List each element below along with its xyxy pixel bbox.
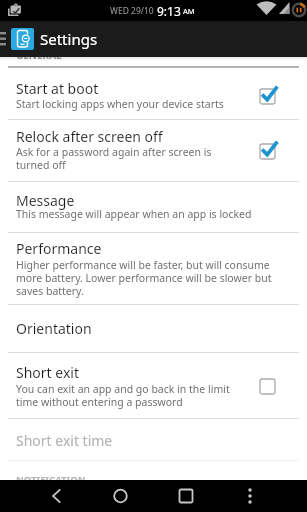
staticText: Short exit time <box>16 431 113 450</box>
staticText: Message <box>16 191 75 210</box>
staticText: Performance <box>16 239 102 258</box>
button[interactable] <box>108 484 132 508</box>
staticText: 9:13 <box>157 3 181 19</box>
staticText: GENERAL <box>16 57 62 62</box>
button[interactable] <box>238 484 262 508</box>
staticText: Ask for a password again after screen is… <box>16 145 212 172</box>
staticText: WED 29/10 <box>110 5 154 17</box>
button[interactable]: Orientation <box>0 305 307 352</box>
button[interactable]: Start at boot <box>0 68 307 119</box>
button[interactable]: Short exit time <box>0 419 307 466</box>
button[interactable] <box>258 373 282 397</box>
staticText: Settings <box>40 29 98 49</box>
button[interactable] <box>174 484 198 508</box>
button[interactable]: Performance <box>0 233 307 304</box>
button[interactable] <box>11 28 34 50</box>
staticText: This message will appear when an app is … <box>16 207 252 221</box>
button[interactable]: Short exit <box>0 353 307 418</box>
button[interactable]: Relock after screen off <box>0 120 307 181</box>
button[interactable] <box>258 83 282 107</box>
staticText: You can exit an app and go back in the l… <box>16 382 230 409</box>
staticText: AM <box>183 6 195 16</box>
staticText: NOTIFICATION <box>16 473 86 480</box>
staticText: Short exit <box>16 363 79 382</box>
button[interactable] <box>258 138 282 162</box>
staticText: Start at boot <box>16 79 99 98</box>
staticText: Orientation <box>16 319 92 338</box>
staticText: Relock after screen off <box>16 127 163 146</box>
staticText: Start locking apps when your device star… <box>16 97 224 111</box>
button[interactable] <box>44 484 68 508</box>
button[interactable]: Message <box>0 182 307 232</box>
staticText: Higher performance will be faster, but w… <box>16 258 272 298</box>
